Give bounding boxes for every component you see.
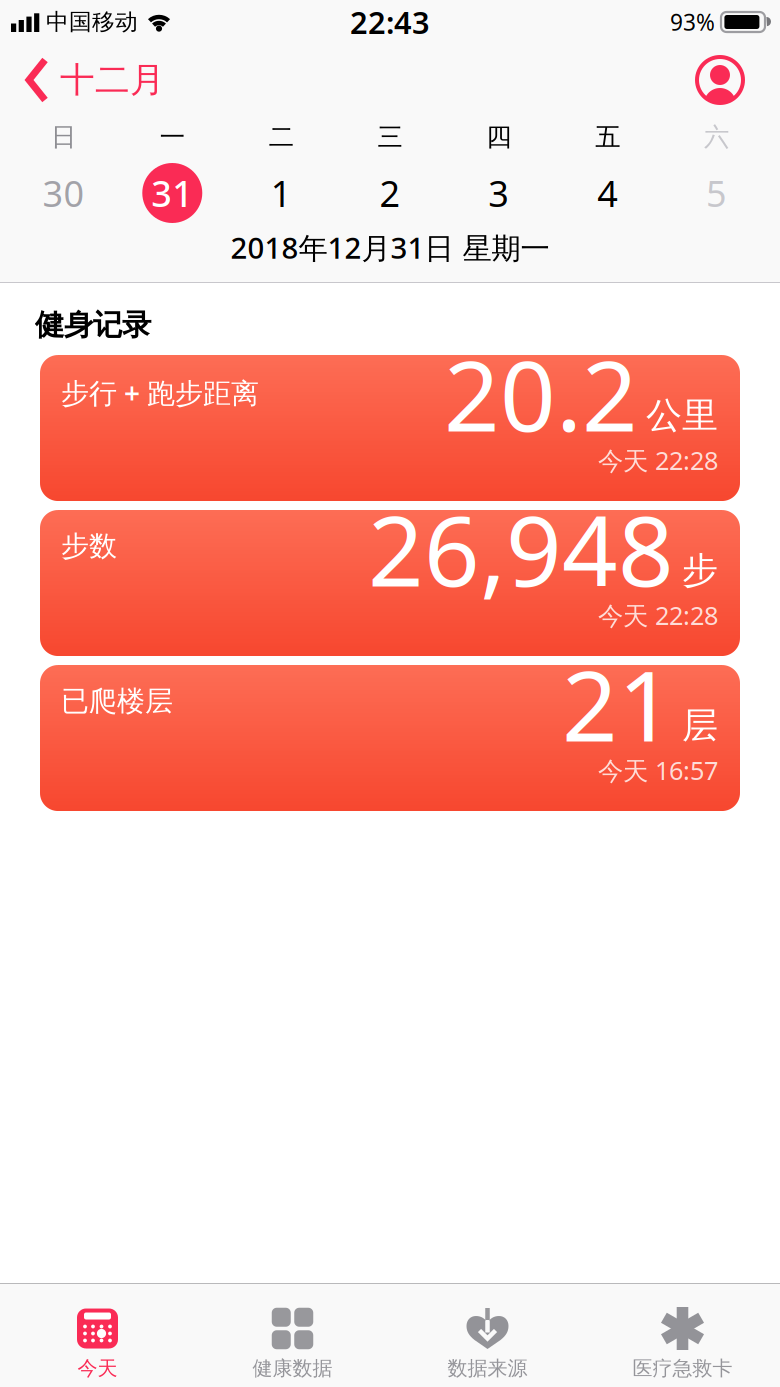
staticText: 步行 + 跑步距离	[61, 374, 259, 411]
button[interactable]: 已爬楼层 21层	[40, 665, 740, 811]
staticText: 2	[379, 169, 400, 217]
staticText: 22:43	[350, 2, 430, 42]
button[interactable]: 12月30日	[9, 158, 118, 228]
staticText: 五	[595, 121, 620, 152]
staticText: 中国移动	[46, 8, 138, 36]
staticText: 三	[377, 121, 402, 152]
staticText: 二	[269, 121, 294, 152]
staticText: 93%	[670, 7, 715, 37]
button[interactable]: 今天	[0, 1308, 195, 1381]
staticText: 26,948	[368, 484, 674, 613]
staticText: 公里	[646, 393, 718, 438]
button[interactable]: 12月1日	[227, 158, 336, 228]
staticText: 已爬楼层	[61, 684, 173, 718]
staticText: 健康数据	[252, 1356, 332, 1381]
button[interactable]: 健康数据	[195, 1308, 390, 1381]
staticText: 步数	[61, 529, 117, 563]
button[interactable]: 数据来源	[390, 1308, 585, 1381]
staticText: 医疗急救卡	[632, 1356, 732, 1381]
staticText: 今天 22:28	[598, 598, 718, 632]
staticText: 十二月	[60, 59, 165, 101]
staticText: 步	[682, 548, 718, 593]
staticText: 30	[42, 169, 84, 217]
staticText: 31	[151, 169, 193, 217]
staticText: 日	[51, 121, 76, 152]
staticText: 4	[597, 169, 618, 217]
button[interactable]: 医疗急救卡	[585, 1308, 780, 1381]
staticText: 1	[271, 169, 292, 217]
button[interactable]: 12月4日	[553, 158, 662, 228]
button[interactable]: 步数 26,948步	[40, 510, 740, 656]
staticText: 2018年12月31日 星期一	[230, 228, 549, 267]
button[interactable]: 12月2日	[336, 158, 444, 228]
staticText: 层	[682, 703, 718, 748]
button[interactable]: 12月5日	[662, 158, 771, 228]
staticText: 21	[562, 639, 674, 768]
button[interactable]: 12月31日	[118, 158, 227, 228]
button[interactable]: 返回 十二月	[26, 59, 165, 101]
staticText: 今天 16:57	[598, 753, 718, 787]
staticText: 3	[488, 169, 509, 217]
button[interactable]: 12月3日	[444, 158, 553, 228]
button[interactable]: 步行 + 跑步距离 20.2公里	[40, 355, 740, 501]
staticText: 20.2	[444, 329, 638, 458]
staticText: 今天	[77, 1356, 117, 1381]
staticText: 5	[706, 169, 727, 217]
staticText: 一	[160, 121, 185, 152]
staticText: 数据来源	[447, 1356, 527, 1381]
button[interactable]: 个人资料	[697, 57, 743, 103]
staticText: 今天 22:28	[598, 443, 718, 477]
staticText: 健身记录	[35, 307, 151, 343]
staticText: 六	[704, 121, 729, 152]
staticText: 四	[486, 121, 511, 152]
